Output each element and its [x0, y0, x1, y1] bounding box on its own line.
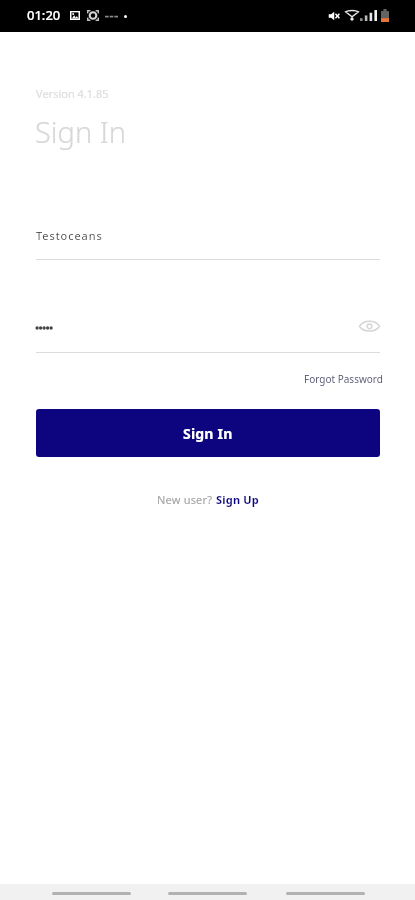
button[interactable]: Back [52, 884, 131, 900]
button[interactable]: Sign Up [216, 492, 259, 507]
staticText: New user? [157, 492, 216, 507]
staticText: Sign In [183, 424, 233, 443]
button[interactable]: Password [36, 315, 380, 353]
staticText: Sign In [35, 112, 127, 151]
button[interactable]: Forgot Password [304, 372, 383, 386]
button[interactable]: Recent apps [286, 884, 365, 900]
staticText: Sign Up [216, 492, 259, 507]
button[interactable]: Show password [355, 314, 383, 337]
button[interactable]: Sign In [36, 409, 380, 457]
staticText: Testoceans [36, 228, 103, 243]
staticText: Forgot Password [304, 372, 383, 386]
staticText: Version 4.1.85 [36, 86, 109, 101]
button[interactable]: User name [36, 222, 380, 260]
button[interactable]: Home [168, 884, 247, 900]
staticText: 01:20 [27, 6, 61, 24]
